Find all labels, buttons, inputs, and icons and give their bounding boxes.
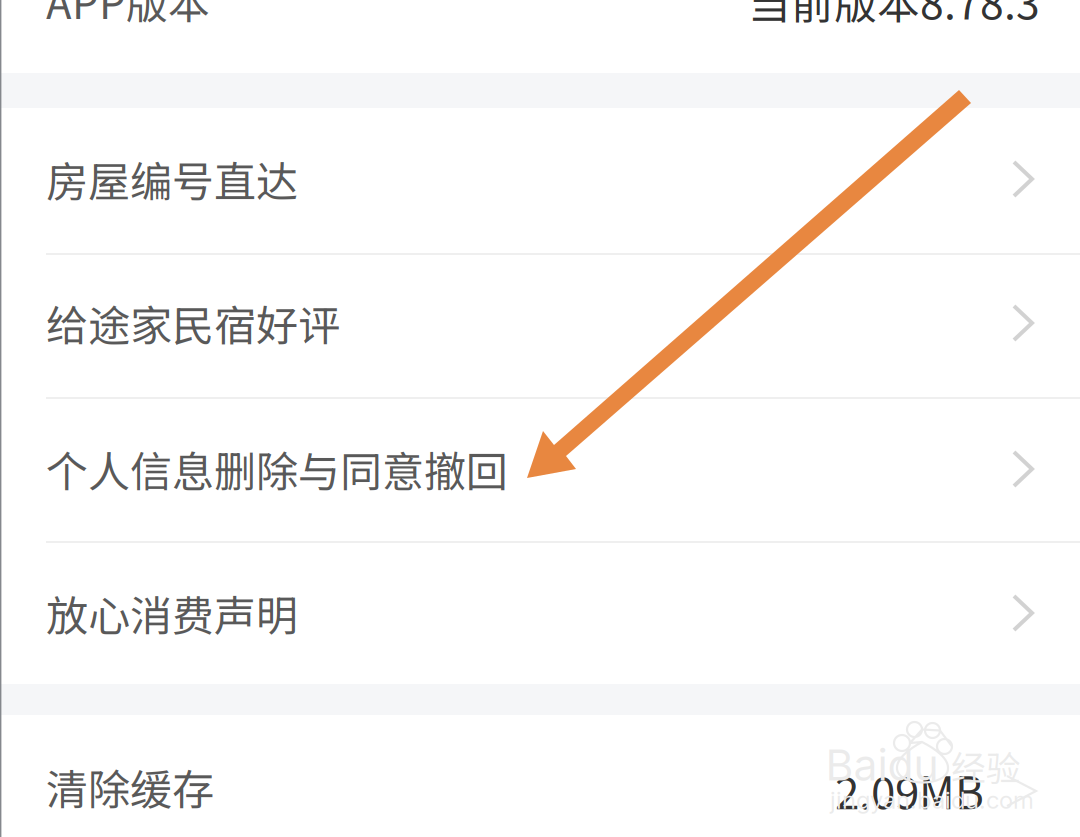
staticText: 放心消费声明: [46, 583, 298, 643]
staticText: APP版本: [46, 0, 210, 31]
staticText: 房屋编号直达: [46, 149, 298, 209]
button[interactable]: 个人信息删除与同意撤回: [0, 397, 1080, 541]
staticText: 清除缓存: [46, 757, 214, 817]
button[interactable]: 清除缓存: [0, 713, 1080, 837]
staticText: 经验: [951, 741, 1021, 791]
button[interactable]: 给途家民宿好评: [0, 251, 1080, 395]
staticText: 2.09MB: [835, 758, 984, 822]
button[interactable]: 放心消费声明: [0, 541, 1080, 685]
staticText: 当前版本8.78.3: [748, 0, 1040, 32]
button[interactable]: 房屋编号直达: [0, 107, 1080, 251]
button[interactable]: APP版本: [0, 0, 1080, 73]
staticText: 个人信息删除与同意撤回: [46, 439, 508, 499]
staticText: jingyan.baidu.com: [830, 785, 1034, 814]
staticText: Baidu: [825, 739, 938, 791]
staticText: 给途家民宿好评: [46, 293, 340, 353]
